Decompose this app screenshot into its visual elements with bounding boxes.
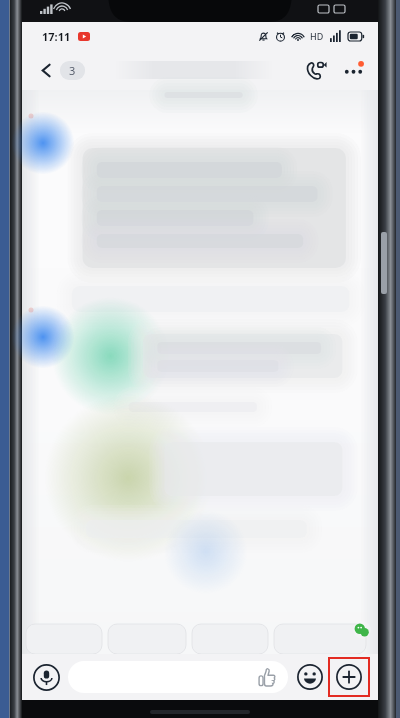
button[interactable]: Back	[32, 57, 91, 84]
button[interactable]: Emoji	[294, 661, 326, 693]
button[interactable]: Message input	[68, 661, 288, 693]
staticText: 17:11	[42, 29, 71, 44]
button[interactable]: More functions	[328, 657, 370, 697]
staticText: HD	[310, 30, 324, 42]
button[interactable]: More options	[337, 54, 370, 87]
button[interactable]: Video call	[300, 54, 333, 87]
button[interactable]: Voice message	[30, 661, 62, 693]
staticText: 3	[69, 63, 76, 78]
